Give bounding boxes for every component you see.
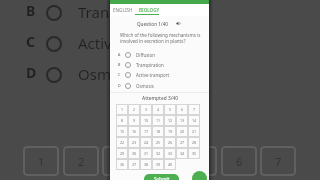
button[interactable]: 34 xyxy=(176,148,188,159)
button[interactable]: 20 xyxy=(176,126,188,137)
button[interactable]: Next question xyxy=(192,171,207,180)
button[interactable]: B xyxy=(110,60,209,70)
staticText: 8 xyxy=(121,118,124,123)
button[interactable]: 17 xyxy=(140,126,152,137)
staticText: 4 xyxy=(157,107,160,112)
staticText: 26 xyxy=(168,140,173,145)
button[interactable]: 36 xyxy=(116,159,128,170)
staticText: 5 xyxy=(196,154,203,169)
staticText: 4 xyxy=(157,154,164,169)
button[interactable]: 31 xyxy=(140,148,152,159)
staticText: 10 xyxy=(144,118,149,123)
staticText: Transpiration xyxy=(78,2,172,22)
staticText: 2 xyxy=(78,154,85,169)
button[interactable]: 35 xyxy=(188,148,200,159)
staticText: 3 xyxy=(145,107,148,112)
staticText: 32 xyxy=(156,151,161,156)
staticText: Diffusion xyxy=(136,52,155,58)
button[interactable]: C xyxy=(110,70,209,80)
staticText: 12 xyxy=(168,118,173,123)
staticText: 24 xyxy=(144,140,149,145)
staticText: 16 xyxy=(132,129,137,134)
staticText: 33 xyxy=(168,151,173,156)
staticText: Active transport xyxy=(78,33,191,53)
button[interactable]: D xyxy=(110,81,209,91)
staticText: 14 xyxy=(192,118,197,123)
staticText: 30 xyxy=(132,151,137,156)
staticText: D xyxy=(26,63,37,82)
staticText: 31 xyxy=(144,151,149,156)
button[interactable]: 5 xyxy=(164,104,176,115)
button[interactable]: BIOLOGY xyxy=(137,4,161,16)
button[interactable]: 30 xyxy=(128,148,140,159)
button[interactable]: 23 xyxy=(128,137,140,148)
staticText: 29 xyxy=(120,151,125,156)
button[interactable]: 6 xyxy=(176,104,188,115)
button[interactable]: 25 xyxy=(152,137,164,148)
staticText: 38 xyxy=(144,162,149,167)
staticText: 1 xyxy=(121,107,124,112)
staticText: B xyxy=(118,62,121,67)
button[interactable]: 32 xyxy=(152,148,164,159)
button[interactable]: 19 xyxy=(164,126,176,137)
staticText: ENGLISH xyxy=(113,7,133,13)
staticText: Transpiration xyxy=(136,62,164,68)
staticText: 27 xyxy=(180,140,185,145)
staticText: 23 xyxy=(132,140,137,145)
button[interactable]: 22 xyxy=(116,137,128,148)
button[interactable]: 11 xyxy=(152,115,164,126)
button[interactable]: 39 xyxy=(152,159,164,170)
staticText: D xyxy=(118,83,121,88)
staticText: 21 xyxy=(192,129,197,134)
button[interactable]: 13 xyxy=(176,115,188,126)
staticText: Attempted 3/40 xyxy=(142,95,178,102)
button[interactable]: ENGLISH xyxy=(112,4,133,16)
button[interactable]: 16 xyxy=(128,126,140,137)
button[interactable]: A xyxy=(110,50,209,60)
staticText: Which of the following mechanisms is inv… xyxy=(120,32,205,44)
staticText: Active transport xyxy=(136,72,170,78)
button[interactable]: 1 xyxy=(116,104,128,115)
button[interactable]: 3 xyxy=(140,104,152,115)
button[interactable]: 18 xyxy=(152,126,164,137)
button[interactable]: 8 xyxy=(116,115,128,126)
staticText: A xyxy=(118,52,121,57)
button[interactable]: 26 xyxy=(164,137,176,148)
staticText: 6 xyxy=(181,107,184,112)
button[interactable]: Play question audio xyxy=(175,20,182,27)
staticText: 11 xyxy=(156,118,161,123)
staticText: 5 xyxy=(169,107,172,112)
staticText: Osmosis xyxy=(78,64,139,84)
button[interactable]: 10 xyxy=(140,115,152,126)
button[interactable]: 38 xyxy=(140,159,152,170)
button[interactable]: 21 xyxy=(188,126,200,137)
button[interactable]: 40 xyxy=(164,159,176,170)
button[interactable]: 2 xyxy=(128,104,140,115)
staticText: BIOLOGY xyxy=(139,7,160,13)
staticText: 7 xyxy=(193,107,196,112)
staticText: 40 xyxy=(168,162,173,167)
button[interactable]: 24 xyxy=(140,137,152,148)
button[interactable]: Submit xyxy=(144,174,179,180)
staticText: 34 xyxy=(180,151,185,156)
button[interactable]: 27 xyxy=(176,137,188,148)
staticText: B xyxy=(26,1,36,20)
staticText: Question 1/40 xyxy=(137,21,168,27)
button[interactable]: 28 xyxy=(188,137,200,148)
button[interactable]: 33 xyxy=(164,148,176,159)
button[interactable]: 9 xyxy=(128,115,140,126)
button[interactable]: 7 xyxy=(188,104,200,115)
staticText: 9 xyxy=(133,118,136,123)
staticText: 39 xyxy=(156,162,161,167)
staticText: 22 xyxy=(120,140,125,145)
button[interactable]: 15 xyxy=(116,126,128,137)
staticText: 18 xyxy=(156,129,161,134)
button[interactable]: 12 xyxy=(164,115,176,126)
button[interactable]: 37 xyxy=(128,159,140,170)
button[interactable]: 29 xyxy=(116,148,128,159)
staticText: 3 xyxy=(117,154,124,169)
button[interactable]: 4 xyxy=(152,104,164,115)
button[interactable]: 14 xyxy=(188,115,200,126)
staticText: 13 xyxy=(180,118,185,123)
staticText: Osmosis xyxy=(136,83,154,89)
